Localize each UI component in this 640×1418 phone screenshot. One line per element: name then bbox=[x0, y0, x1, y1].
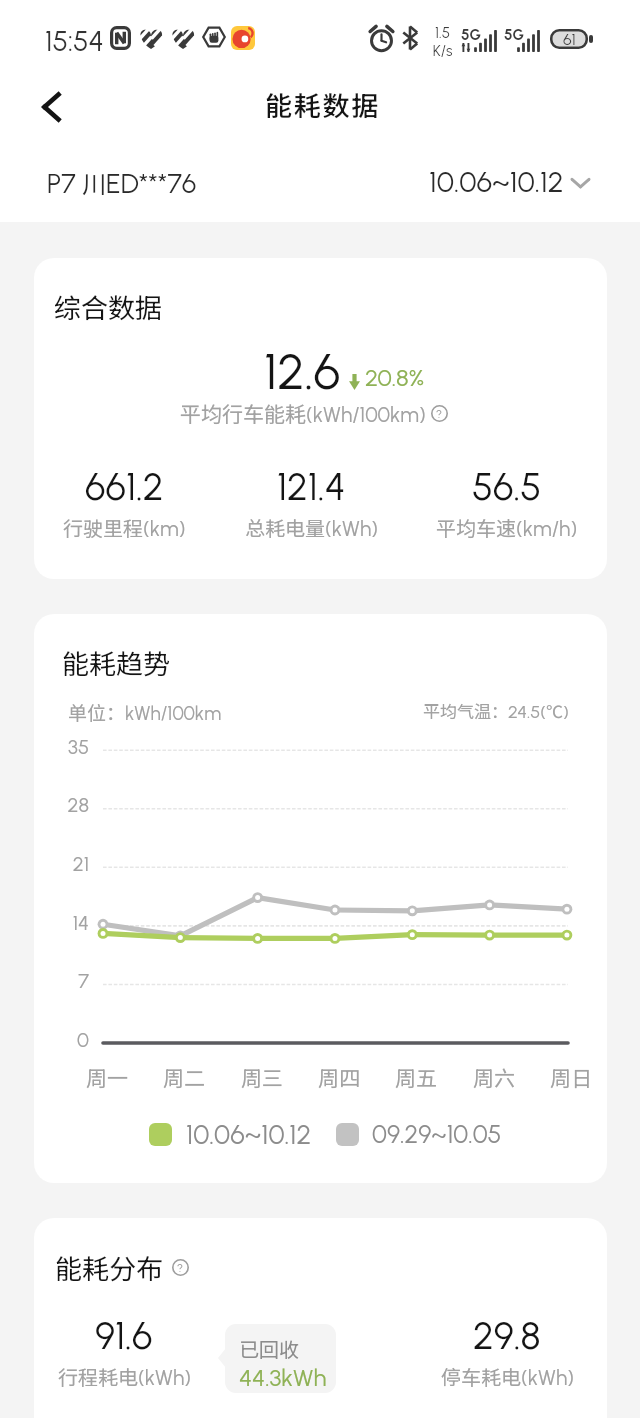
staticText: 29.8 bbox=[473, 1313, 541, 1359]
staticText: 5G bbox=[504, 26, 525, 44]
staticText: 周二 bbox=[144, 1062, 224, 1092]
staticText: 平均车速(km/h) bbox=[436, 513, 578, 542]
staticText: 56.5 bbox=[472, 464, 542, 510]
staticText: 44.3kWh bbox=[239, 1363, 327, 1392]
staticText: 21 bbox=[40, 852, 89, 876]
staticText: 91.6 bbox=[95, 1313, 153, 1359]
staticText: 14 bbox=[40, 911, 89, 935]
staticText: 661.2 bbox=[85, 464, 164, 510]
staticText: 7 bbox=[40, 969, 89, 993]
staticText: 周四 bbox=[299, 1062, 379, 1092]
staticText: 12.6 bbox=[264, 341, 341, 401]
button[interactable]: Help bbox=[431, 405, 448, 422]
button[interactable]: 09.29~10.05 bbox=[336, 1119, 502, 1149]
staticText: 121.4 bbox=[277, 464, 346, 510]
button[interactable]: 10.06~10.12 bbox=[429, 164, 590, 199]
button[interactable]: Help bbox=[172, 1259, 189, 1276]
staticText: 10.06~10.12 bbox=[186, 1118, 312, 1150]
staticText: 综合数据 bbox=[54, 287, 162, 326]
staticText: 10.06~10.12 bbox=[429, 164, 564, 199]
staticText: 总耗电量(kWh) bbox=[245, 513, 378, 542]
staticText: ? bbox=[177, 1261, 184, 1275]
staticText: 35 bbox=[40, 735, 89, 759]
staticText: 平均气温：24.5(℃) bbox=[423, 698, 569, 723]
staticText: 已回收 bbox=[239, 1334, 299, 1363]
staticText: 61 bbox=[563, 30, 576, 49]
staticText: 能耗分布 bbox=[55, 1248, 163, 1287]
staticText: 行程耗电(kWh) bbox=[58, 1362, 191, 1391]
staticText: 0 bbox=[40, 1028, 89, 1052]
staticText: 能耗趋势 bbox=[62, 643, 170, 682]
staticText: 周一 bbox=[67, 1062, 147, 1092]
staticText: 28 bbox=[40, 793, 89, 817]
button[interactable]: 10.06~10.12 bbox=[149, 1118, 312, 1150]
staticText: 单位：kWh/100km bbox=[68, 698, 222, 726]
staticText: 能耗数据 bbox=[265, 85, 381, 124]
staticText: 周三 bbox=[222, 1062, 302, 1092]
staticText: P7 川ED***76 bbox=[47, 165, 197, 200]
staticText: 20.8% bbox=[365, 363, 425, 392]
staticText: 周日 bbox=[531, 1062, 607, 1092]
staticText: 15:54 bbox=[45, 24, 104, 58]
staticText: 周五 bbox=[376, 1062, 456, 1092]
staticText: K/s bbox=[430, 42, 455, 60]
staticText: 停车耗电(kWh) bbox=[441, 1362, 574, 1391]
staticText: 周六 bbox=[454, 1062, 534, 1092]
staticText: 5G bbox=[461, 26, 482, 44]
staticText: 1.5 bbox=[430, 24, 455, 42]
button[interactable]: Back bbox=[27, 83, 75, 131]
staticText: 行驶里程(km) bbox=[63, 513, 186, 542]
staticText: 09.29~10.05 bbox=[372, 1119, 502, 1149]
staticText: ? bbox=[436, 407, 443, 421]
staticText: 平均行车能耗(kWh/100km) bbox=[180, 398, 426, 428]
